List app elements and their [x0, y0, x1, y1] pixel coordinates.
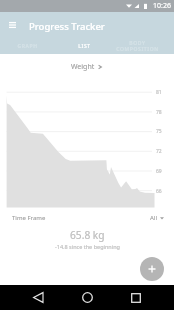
staticText: GRAPH [17, 43, 38, 50]
button[interactable]: Home [75, 285, 100, 310]
button[interactable]: Back [25, 285, 50, 310]
staticText: Weight [71, 62, 95, 72]
staticText: 65.8 kg [70, 228, 105, 242]
button[interactable]: Open navigation menu [5, 18, 19, 32]
button[interactable]: Weight [71, 62, 102, 72]
button[interactable]: BODY COMPOSITION [112, 38, 162, 54]
staticText: Progress Tracker [29, 20, 105, 33]
button[interactable]: Add entry [140, 257, 164, 281]
staticText: 69 [156, 168, 162, 175]
staticText: All [150, 214, 157, 222]
button[interactable]: Recent apps [123, 285, 148, 310]
staticText: LIST [78, 43, 91, 50]
staticText: -14.8 since the beginning [55, 243, 120, 250]
staticText: 10:26 [153, 1, 171, 11]
staticText: Time Frame [12, 214, 46, 222]
staticText: 75 [156, 128, 162, 135]
staticText: 78 [156, 109, 162, 116]
staticText: 81 [156, 89, 162, 96]
staticText: 72 [156, 148, 162, 155]
button[interactable]: LIST [58, 38, 110, 54]
button[interactable]: All [150, 214, 164, 222]
staticText: 66 [156, 188, 162, 195]
staticText: BODY COMPOSITION [116, 40, 159, 53]
